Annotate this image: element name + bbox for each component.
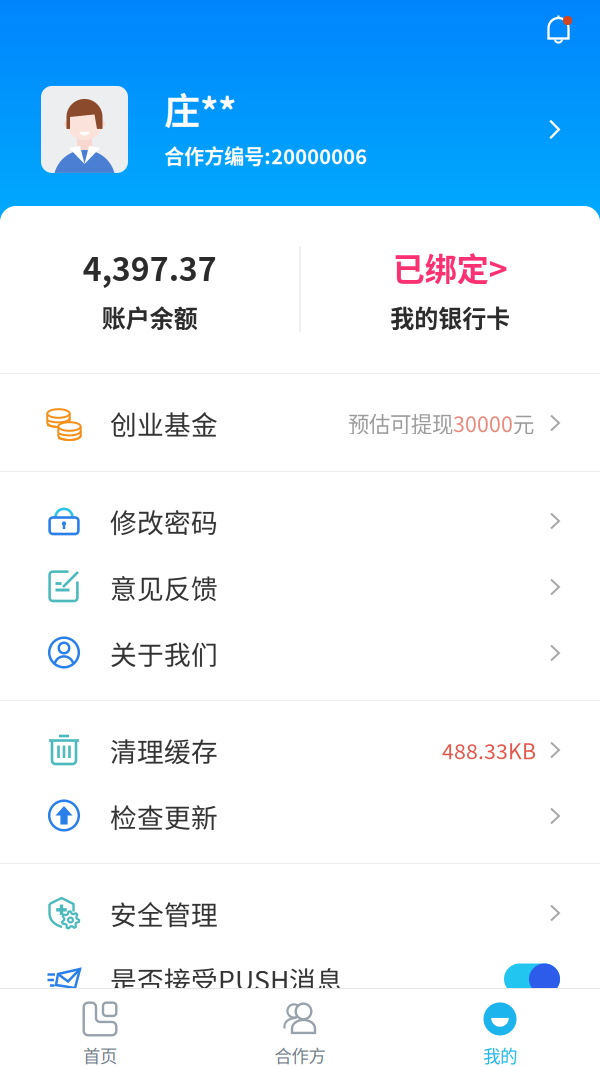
staticText: 已绑定> [393,244,508,290]
button[interactable]: 是否接受PUSH消息 [0,946,600,1012]
staticText: 488.33KB [442,735,536,765]
button[interactable]: 检查更新 [0,783,600,849]
button[interactable]: 修改密码 [0,488,600,554]
staticText: 我的银行卡 [390,299,510,334]
staticText: 庄** [164,83,236,135]
button[interactable]: 4,397.37 [0,206,299,373]
staticText: 合作方编号:20000006 [164,141,367,170]
staticText: 是否接受PUSH消息 [110,960,343,998]
button[interactable]: 首页 [0,989,200,1067]
staticText: 4,397.37 [83,244,217,290]
staticText: 30000 [453,408,513,438]
button[interactable]: 意见反馈 [0,554,600,620]
button[interactable]: 已绑定> [300,206,600,373]
button[interactable]: 清理缓存 [0,717,600,783]
button[interactable]: 庄** [0,61,600,176]
staticText: 我的 [483,1042,517,1067]
staticText: 预估可提现 [348,408,453,438]
staticText: 元 [513,408,534,438]
button[interactable]: 合作方 [200,989,400,1067]
button[interactable]: 关于我们 [0,620,600,686]
button[interactable]: 创业基金 [0,390,600,456]
button[interactable]: 安全管理 [0,880,600,946]
staticText: 关于我们 [110,634,218,672]
staticText: 清理缓存 [110,731,218,769]
staticText: 合作方 [274,1042,325,1067]
button[interactable]: 我的 [400,989,600,1067]
staticText: 意见反馈 [110,568,218,606]
staticText: 安全管理 [110,894,218,932]
staticText: 创业基金 [110,404,218,442]
staticText: 检查更新 [110,797,218,835]
staticText: 修改密码 [110,502,218,540]
staticText: 账户余额 [102,299,198,334]
staticText: 首页 [83,1042,117,1067]
button[interactable]: Notifications [533,0,600,61]
